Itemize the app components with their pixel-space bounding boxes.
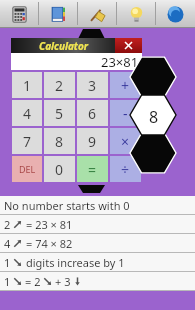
staticText: No number starts with 0 — [4, 198, 130, 213]
button[interactable]: 1 — [0, 272, 195, 291]
button[interactable]: 3 — [77, 72, 108, 98]
button[interactable]: 2 — [44, 72, 75, 98]
button[interactable]: Calculator — [0, 0, 39, 28]
button[interactable]: + — [110, 72, 141, 98]
staticText: - — [123, 104, 128, 123]
button[interactable]: 5 — [44, 100, 75, 126]
button[interactable]: - — [110, 100, 141, 126]
button[interactable]: 8 — [44, 128, 75, 154]
button[interactable]: = — [77, 156, 108, 182]
staticText: 3 — [88, 76, 97, 95]
staticText: 8 — [149, 106, 159, 123]
staticText: × — [121, 132, 130, 151]
staticText: digits increase by 1 — [26, 255, 125, 270]
staticText: = 74 × 82 — [26, 236, 73, 251]
button[interactable]: Reference book — [39, 0, 78, 28]
staticText: 4 — [23, 104, 32, 123]
staticText: 1 — [4, 274, 11, 289]
button[interactable]: No number starts with 0 — [0, 196, 195, 215]
staticText: = 23 × 81 — [26, 217, 73, 232]
staticText: Calculator — [39, 39, 88, 53]
button[interactable]: 4 — [0, 234, 195, 253]
button[interactable]: Clear — [78, 0, 117, 28]
staticText: 6 — [88, 104, 97, 123]
button[interactable]: ÷ — [110, 156, 141, 182]
staticText: 4 — [4, 236, 11, 251]
button[interactable]: 1 — [12, 72, 42, 98]
staticText: 1 — [4, 255, 11, 270]
staticText: 8 — [55, 132, 64, 151]
staticText: 2 — [55, 76, 64, 95]
staticText: ÷ — [121, 160, 130, 179]
button[interactable]: Help — [156, 0, 195, 28]
button[interactable]: 7 — [12, 128, 42, 154]
staticText: DEL — [19, 163, 36, 175]
button[interactable]: Close — [115, 38, 142, 53]
staticText: 5 — [55, 104, 64, 123]
staticText: + — [121, 76, 130, 95]
staticText: 7 — [23, 132, 32, 151]
button[interactable]: Hint — [117, 0, 156, 28]
button[interactable]: 4 — [12, 100, 42, 126]
button[interactable]: 0 — [44, 156, 75, 182]
staticText: + 3 — [55, 274, 71, 289]
staticText: 23×81 — [101, 53, 139, 70]
staticText: 9 — [88, 132, 97, 151]
staticText: = — [88, 160, 97, 179]
button[interactable]: DEL — [12, 156, 42, 182]
button[interactable]: 1 — [0, 253, 195, 272]
other: Result 8 — [0, 0, 195, 310]
staticText: = 2 — [25, 274, 41, 289]
staticText: 0 — [55, 160, 64, 179]
button[interactable]: 9 — [77, 128, 108, 154]
button[interactable]: 6 — [77, 100, 108, 126]
button[interactable]: 2 — [0, 215, 195, 234]
staticText: 2 — [4, 217, 11, 232]
button[interactable]: × — [110, 128, 141, 154]
staticText: 1 — [23, 76, 32, 95]
